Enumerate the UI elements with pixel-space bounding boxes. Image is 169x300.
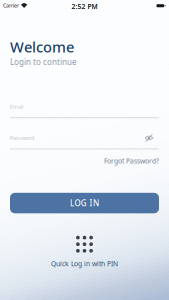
button[interactable]: Show password	[144, 133, 154, 142]
staticText: Forgot Password?	[104, 156, 159, 165]
button[interactable]: Forgot Password?	[104, 156, 159, 165]
staticText: 2:52 PM	[71, 2, 97, 11]
button[interactable]: LOG IN	[10, 193, 159, 213]
button[interactable]: Quick Log in with PIN	[51, 236, 118, 268]
staticText: LOG IN	[70, 198, 99, 208]
staticText: Login to continue	[10, 56, 77, 67]
staticText: Email	[10, 103, 23, 110]
staticText: Carrier	[3, 2, 19, 9]
staticText: Password	[10, 134, 34, 141]
staticText: Quick Log in with PIN	[51, 259, 118, 268]
staticText: Welcome	[10, 37, 74, 56]
